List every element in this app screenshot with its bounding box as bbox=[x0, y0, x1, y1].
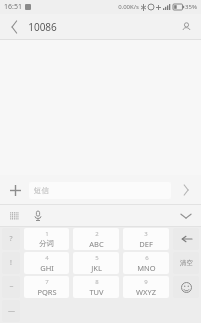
staticText: 10086 bbox=[28, 20, 57, 34]
staticText: 0.00K/s bbox=[118, 3, 139, 11]
button[interactable]: 2 bbox=[73, 228, 119, 250]
button[interactable]: 短信 bbox=[29, 182, 171, 199]
staticText: ~ bbox=[9, 282, 14, 292]
button[interactable]: 6 bbox=[123, 252, 169, 274]
button[interactable]: Send bbox=[177, 181, 195, 199]
staticText: PQRS bbox=[37, 287, 57, 297]
staticText: 8 bbox=[95, 278, 99, 286]
button[interactable]: 5 bbox=[73, 252, 119, 274]
staticText: 7 bbox=[45, 278, 49, 286]
button[interactable]: 8 bbox=[73, 276, 119, 298]
button[interactable]: Hide keyboard bbox=[177, 207, 195, 225]
button[interactable]: Emoji bbox=[173, 276, 199, 298]
staticText: 16:51 bbox=[4, 2, 22, 12]
staticText: ! bbox=[10, 258, 12, 268]
button[interactable]: 9 bbox=[123, 276, 169, 298]
staticText: 3 bbox=[144, 230, 148, 238]
staticText: 4 bbox=[45, 254, 49, 262]
staticText: — bbox=[8, 306, 15, 316]
staticText: GHI bbox=[40, 263, 54, 273]
button[interactable]: ? bbox=[2, 228, 20, 250]
button[interactable]: Voice input bbox=[30, 208, 46, 224]
button[interactable]: Contact info bbox=[171, 14, 201, 40]
staticText: ? bbox=[9, 234, 13, 244]
staticText: DEF bbox=[139, 239, 153, 249]
staticText: MNO bbox=[137, 263, 156, 273]
staticText: 35% bbox=[185, 3, 197, 11]
staticText: JKL bbox=[91, 263, 102, 273]
staticText: 短信 bbox=[34, 186, 49, 195]
staticText: 2 bbox=[95, 230, 99, 238]
button[interactable]: Keyboard layout bbox=[6, 208, 22, 224]
button[interactable]: — bbox=[2, 300, 20, 322]
button[interactable]: Clear bbox=[173, 252, 199, 274]
staticText: 分词 bbox=[39, 239, 54, 248]
staticText: TUV bbox=[89, 287, 104, 297]
button[interactable]: ~ bbox=[2, 276, 20, 298]
staticText: 9 bbox=[144, 278, 148, 286]
staticText: ABC bbox=[89, 239, 104, 249]
button[interactable]: Add attachment bbox=[6, 181, 24, 199]
staticText: 6 bbox=[145, 254, 149, 262]
staticText: 清空 bbox=[180, 259, 193, 267]
staticText: WXYZ bbox=[136, 287, 156, 297]
button[interactable]: 3 bbox=[123, 228, 169, 250]
button[interactable]: 1 bbox=[24, 228, 69, 250]
button[interactable]: Back bbox=[0, 14, 28, 40]
button[interactable]: ! bbox=[2, 252, 20, 274]
button[interactable]: 7 bbox=[24, 276, 69, 298]
staticText: 5 bbox=[95, 254, 99, 262]
button[interactable]: Backspace bbox=[173, 228, 199, 250]
button[interactable]: 4 bbox=[24, 252, 69, 274]
staticText: 1 bbox=[45, 230, 49, 238]
